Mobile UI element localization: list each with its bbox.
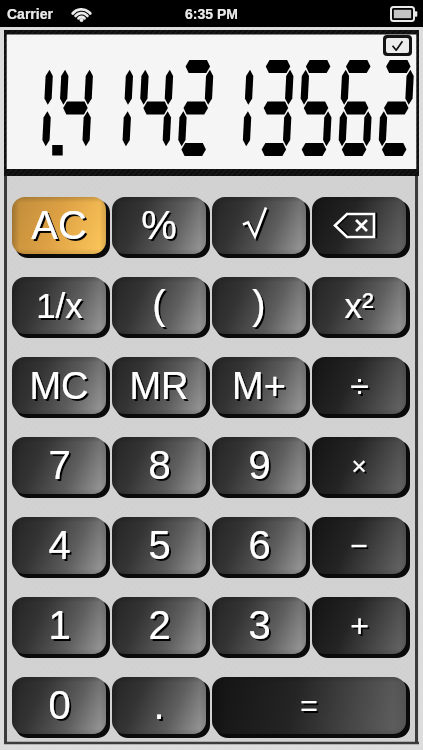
staticText: MC	[31, 367, 91, 409]
staticText: =	[302, 691, 320, 725]
button[interactable]: 0	[12, 677, 110, 738]
button[interactable]: 3	[212, 597, 310, 658]
staticText: x²	[346, 288, 376, 327]
staticText: 1	[48, 603, 71, 648]
button[interactable]: AC	[12, 197, 110, 258]
button[interactable]: ÷	[312, 357, 410, 418]
staticText: 1/x	[38, 288, 85, 327]
staticText: AC	[33, 205, 89, 250]
staticText: )	[254, 285, 268, 330]
staticText: %	[141, 203, 177, 248]
button[interactable]: 1	[12, 597, 110, 658]
staticText: 9	[250, 445, 273, 490]
button[interactable]: MC	[12, 357, 110, 418]
staticText: 2	[150, 605, 173, 650]
button[interactable]: 4	[12, 517, 110, 578]
button[interactable]: 8	[112, 437, 210, 498]
staticText: 8	[148, 443, 171, 488]
staticText: 9	[248, 443, 271, 488]
button[interactable]: .	[112, 677, 210, 738]
staticText: ÷	[352, 369, 371, 407]
staticText: (	[152, 283, 166, 328]
button[interactable]: (	[112, 277, 210, 338]
staticText: 7	[48, 443, 71, 488]
staticText: MR	[129, 365, 189, 407]
staticText: (	[154, 285, 168, 330]
staticText: x²	[344, 286, 374, 325]
staticText: +	[350, 608, 369, 644]
staticText: ×	[353, 453, 369, 482]
button[interactable]: Delete	[312, 197, 410, 258]
button[interactable]: Toggle	[386, 38, 409, 53]
staticText: 4	[50, 525, 73, 570]
staticText: 2	[148, 603, 171, 648]
button[interactable]: )	[212, 277, 310, 338]
staticText: ×	[351, 451, 367, 480]
button[interactable]: −	[312, 517, 410, 578]
staticText: 6:35 PM	[185, 6, 238, 22]
staticText: M+	[234, 367, 288, 409]
staticText: 0	[50, 685, 73, 730]
staticText: 8	[150, 445, 173, 490]
staticText: −	[350, 529, 368, 563]
button[interactable]: M+	[212, 357, 310, 418]
staticText: %	[143, 205, 179, 250]
button[interactable]: 7	[12, 437, 110, 498]
staticText: )	[252, 283, 266, 328]
staticText: .	[153, 683, 165, 728]
button[interactable]: 1/x	[12, 277, 110, 338]
button[interactable]: 2	[112, 597, 210, 658]
staticText: Carrier	[7, 6, 53, 22]
staticText: 3	[250, 605, 273, 650]
staticText: 7	[50, 445, 73, 490]
button[interactable]: 6	[212, 517, 310, 578]
button[interactable]: MR	[112, 357, 210, 418]
staticText: 6	[248, 523, 271, 568]
staticText: 5	[150, 525, 173, 570]
staticText: 0	[48, 683, 71, 728]
staticText: M+	[232, 365, 286, 407]
button[interactable]: Square root	[212, 197, 310, 258]
staticText: 4	[48, 523, 71, 568]
staticText: 6	[250, 525, 273, 570]
button[interactable]: =	[212, 677, 410, 738]
staticText: 1	[50, 605, 73, 650]
button[interactable]: 5	[112, 517, 210, 578]
staticText: +	[352, 610, 371, 646]
staticText: .	[155, 685, 167, 730]
staticText: 1/x	[36, 286, 83, 325]
staticText: 3	[248, 603, 271, 648]
button[interactable]: 9	[212, 437, 310, 498]
staticText: MR	[131, 367, 191, 409]
button[interactable]: +	[312, 597, 410, 658]
staticText: −	[352, 531, 370, 565]
staticText: ÷	[350, 367, 369, 405]
button[interactable]: %	[112, 197, 210, 258]
button[interactable]: ×	[312, 437, 410, 498]
button[interactable]: x²	[312, 277, 410, 338]
staticText: =	[300, 689, 318, 723]
staticText: 5	[148, 523, 171, 568]
staticText: MC	[29, 365, 89, 407]
staticText: AC	[31, 203, 87, 248]
